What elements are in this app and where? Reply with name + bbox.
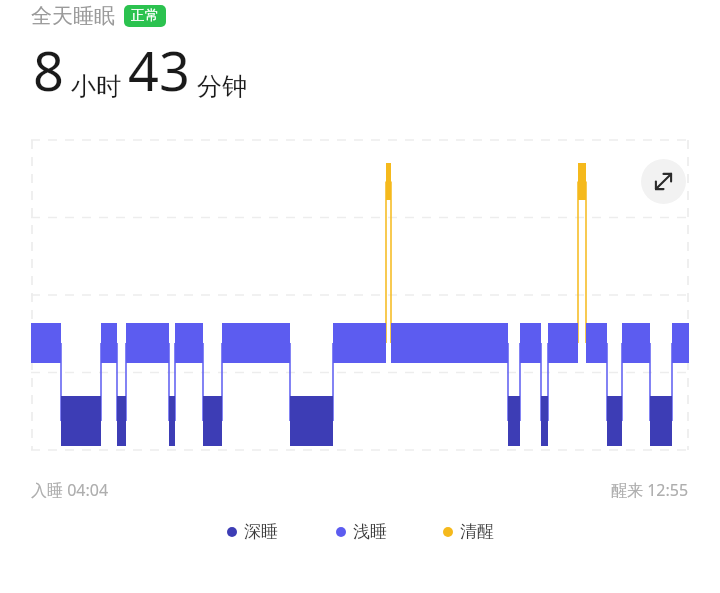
staticText: 入睡 04:04 <box>31 479 109 501</box>
staticText: 醒来 12:55 <box>611 479 689 501</box>
staticText: 43 <box>128 33 190 107</box>
staticText: 8 <box>33 33 64 107</box>
button[interactable]: 清醒 <box>443 521 494 542</box>
staticText: 正常 <box>131 7 159 25</box>
button[interactable]: 正常 <box>124 5 166 27</box>
staticText: 全天睡眠 <box>31 3 115 29</box>
button[interactable]: 浅睡 <box>336 521 387 542</box>
button[interactable]: 深睡 <box>227 521 278 542</box>
button[interactable]: Expand chart <box>641 159 686 204</box>
staticText: 清醒 <box>460 521 494 542</box>
staticText: 深睡 <box>244 521 278 542</box>
staticText: 分钟 <box>197 71 247 102</box>
staticText: 小时 <box>71 71 121 102</box>
staticText: 浅睡 <box>353 521 387 542</box>
